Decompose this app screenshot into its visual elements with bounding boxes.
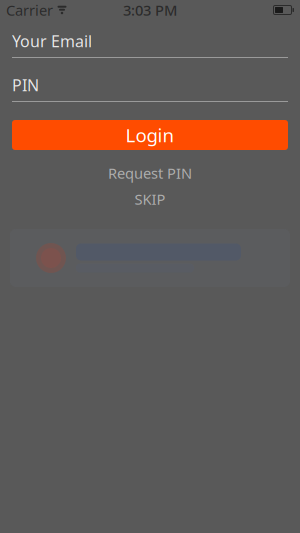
staticText: PIN: [12, 74, 39, 96]
staticText: SKIP: [134, 189, 165, 209]
staticText: Carrier: [6, 0, 53, 20]
staticText: Your Email: [12, 30, 92, 52]
staticText: Login: [125, 123, 174, 147]
button[interactable]: Login: [12, 120, 288, 150]
button[interactable]: Request PIN: [0, 163, 300, 183]
button[interactable]: SKIP: [0, 189, 300, 209]
staticText: Request PIN: [108, 163, 192, 183]
staticText: 3:03 PM: [123, 0, 177, 20]
